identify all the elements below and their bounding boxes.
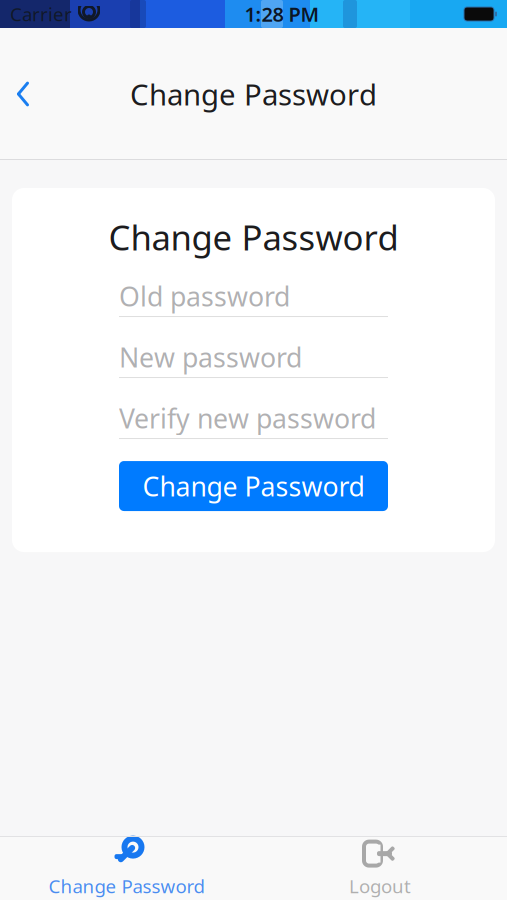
button[interactable]: Back <box>0 66 46 122</box>
staticText: Change Password <box>48 874 204 898</box>
button[interactable]: Logout <box>253 836 507 900</box>
button[interactable]: Change Password <box>0 836 253 900</box>
button[interactable]: Change Password <box>119 461 388 511</box>
staticText: Logout <box>349 874 411 898</box>
staticText: 1:28 PM <box>244 1 319 27</box>
staticText: Carrier <box>10 2 72 26</box>
staticText: Change Password <box>130 74 377 113</box>
staticText: Change Password <box>142 468 364 504</box>
staticText: New password <box>119 339 302 375</box>
staticText: Old password <box>119 278 290 314</box>
staticText: Change Password <box>108 214 398 260</box>
staticText: Verify new password <box>119 400 376 436</box>
